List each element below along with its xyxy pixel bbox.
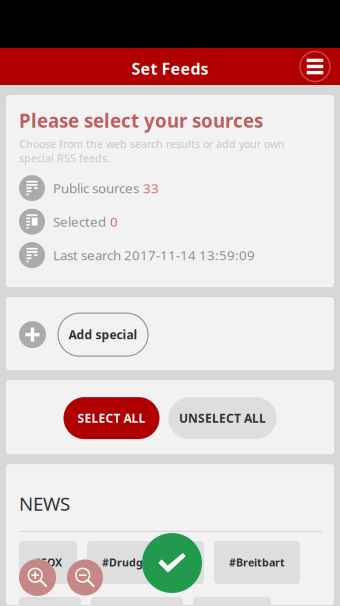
- staticText: Selected: [53, 213, 106, 230]
- staticText: Please select your sources: [19, 108, 263, 133]
- staticText: Last search 2017-11-14 13:59:09: [53, 246, 255, 264]
- button[interactable]: SELECT ALL: [63, 397, 159, 439]
- staticText: Public sources: [53, 179, 139, 197]
- button[interactable]: Zoom in: [19, 559, 56, 596]
- staticText: Add special: [68, 327, 137, 343]
- staticText: Set Feeds: [131, 58, 208, 79]
- button[interactable]: Menu: [300, 47, 340, 85]
- staticText: UNSELECT ALL: [179, 410, 266, 426]
- staticText: #Breitbart: [229, 555, 285, 569]
- button[interactable]: Add special: [58, 313, 148, 356]
- staticText: SELECT ALL: [77, 410, 145, 426]
- staticText: 0: [110, 213, 118, 230]
- button[interactable]: Zoom out: [67, 559, 103, 595]
- button[interactable]: #FOX: [19, 541, 77, 584]
- staticText: NEWS: [19, 491, 70, 516]
- staticText: #FOX: [34, 555, 62, 569]
- staticText: Choose from the web search results or ad…: [19, 137, 285, 165]
- button[interactable]: #Breitbart: [214, 541, 300, 584]
- button[interactable]: #Drudge Report: [87, 541, 204, 584]
- staticText: #Drudge Report: [102, 555, 189, 569]
- staticText: 33: [143, 179, 159, 197]
- button[interactable]: Add: [19, 321, 46, 348]
- button[interactable]: Confirm: [142, 533, 202, 593]
- button[interactable]: UNSELECT ALL: [168, 397, 276, 439]
